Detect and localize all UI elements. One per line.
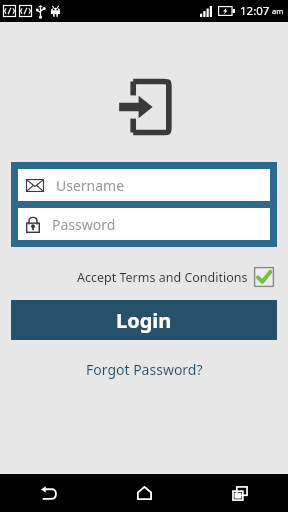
staticText: Username	[56, 176, 125, 195]
staticText: Accept Terms and Conditions	[77, 269, 248, 286]
button[interactable]: Login	[11, 300, 277, 340]
staticText: Forgot Password?	[86, 360, 203, 379]
staticText: 12:07	[240, 3, 270, 19]
button[interactable]: Username	[18, 169, 270, 201]
button[interactable]: Back	[0, 474, 96, 512]
button[interactable]: Password	[18, 208, 270, 240]
button[interactable]: Accept terms checkbox	[254, 267, 274, 287]
staticText: am	[272, 6, 284, 16]
staticText: Login	[116, 307, 172, 334]
button[interactable]: Home	[96, 474, 192, 512]
button[interactable]: Forgot Password?	[82, 356, 207, 383]
button[interactable]: Recent apps	[192, 474, 288, 512]
button[interactable]: Accept Terms and Conditions	[0, 267, 274, 287]
staticText: Password	[52, 215, 116, 234]
